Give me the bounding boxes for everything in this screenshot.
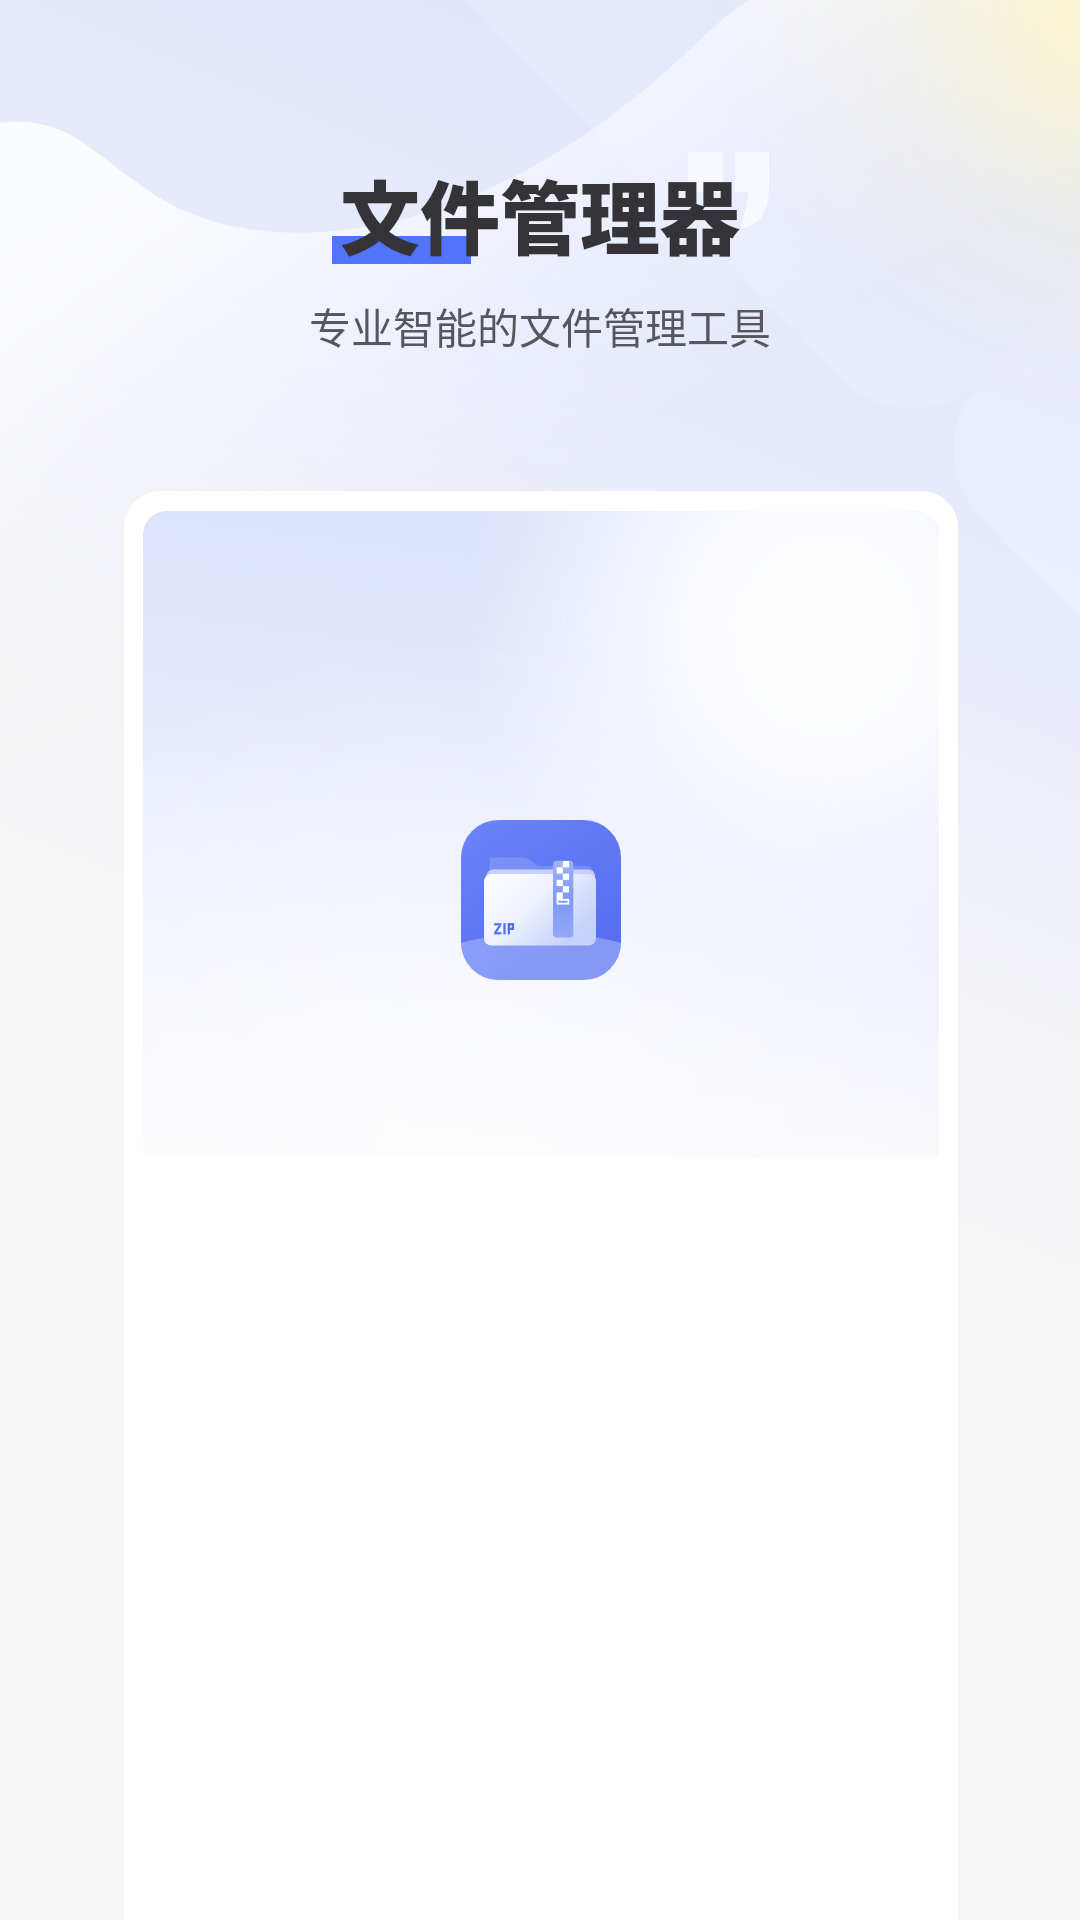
- staticText: 专业智能的文件管理工具: [309, 295, 772, 356]
- staticText: 文件管理器: [340, 155, 740, 271]
- button[interactable]: ZIP file manager app icon: [461, 820, 621, 980]
